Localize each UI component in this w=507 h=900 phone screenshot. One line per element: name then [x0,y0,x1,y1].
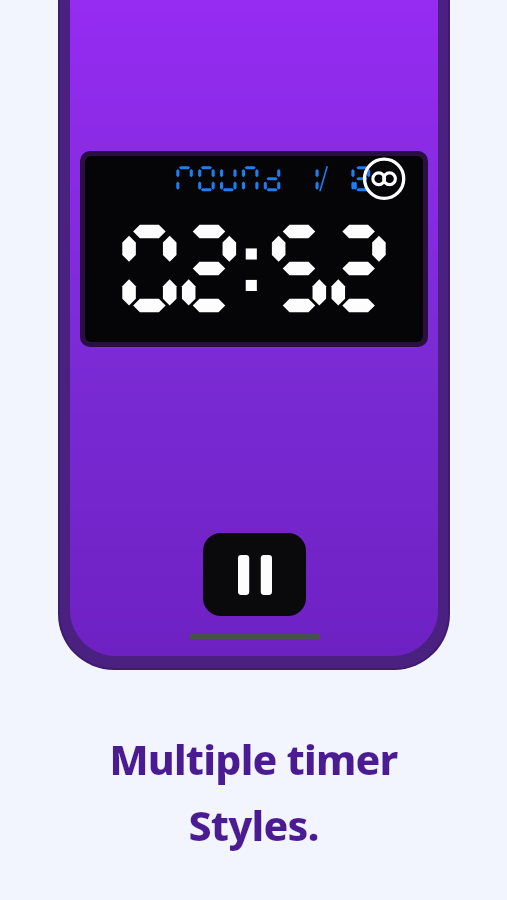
button[interactable]: Pause [203,533,306,616]
staticText: Styles. [188,797,319,853]
button[interactable] [80,151,428,347]
staticText: Multiple timer [109,731,398,787]
